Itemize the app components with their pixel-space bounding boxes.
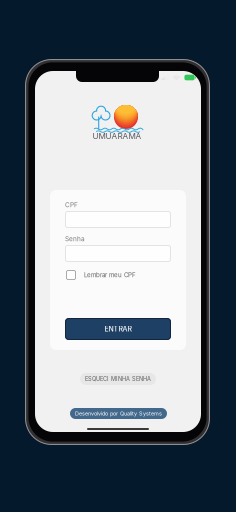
button[interactable]: Lembrar meu CPF	[66, 269, 172, 281]
staticText: CPF	[65, 201, 78, 209]
staticText: ESQUECI MINHA SENHA	[85, 376, 151, 382]
button[interactable]: ENTRAR	[65, 318, 171, 340]
staticText: Senha	[65, 235, 85, 243]
staticText: Desenvolvido por Quality Systems	[75, 410, 162, 417]
button[interactable]: ESQUECI MINHA SENHA	[80, 373, 156, 385]
staticText: ENTRAR	[104, 325, 131, 333]
staticText: Lembrar meu CPF	[84, 271, 136, 279]
button[interactable]: Desenvolvido por Quality Systems	[70, 408, 167, 419]
staticText: UMUARAMA	[92, 131, 141, 141]
